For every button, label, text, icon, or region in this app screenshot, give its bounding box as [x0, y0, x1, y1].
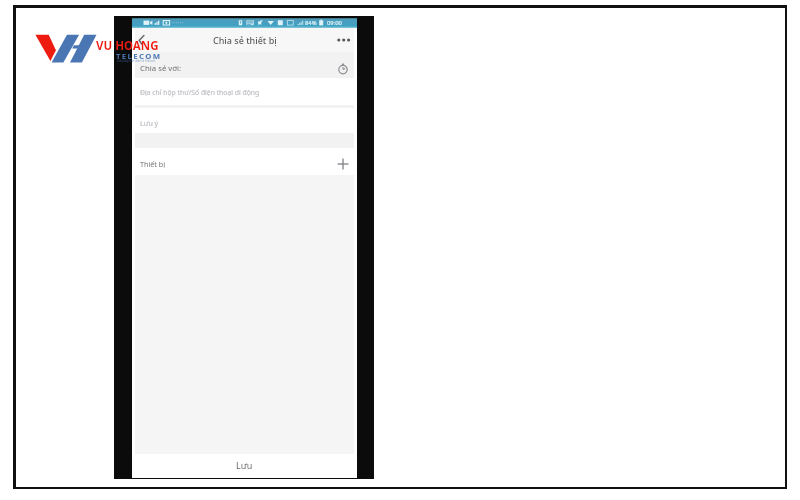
button[interactable]: Thiết bị — [135, 148, 354, 175]
button[interactable]: Chia sẻ với: — [135, 52, 354, 78]
staticText: Chia sẻ với: — [140, 63, 182, 74]
staticText: Giải pháp toàn diện về Telecom — [117, 59, 156, 63]
button[interactable]: Lưu ý — [135, 108, 354, 133]
staticText: Lưu — [236, 459, 253, 471]
button[interactable]: Lưu — [135, 454, 354, 478]
button[interactable]: More options — [330, 30, 354, 50]
button[interactable]: Địa chỉ hộp thư/Số điện thoại di động — [135, 78, 354, 105]
staticText: Địa chỉ hộp thư/Số điện thoại di động — [140, 88, 260, 97]
staticText: Lưu ý — [140, 119, 159, 129]
staticText: Chia sẻ thiết bị — [213, 34, 277, 46]
button[interactable]: Add device — [335, 156, 351, 172]
staticText: 84% — [305, 19, 317, 27]
staticText: 09:00 — [327, 19, 342, 27]
button[interactable]: Back — [135, 28, 155, 52]
staticText: VU HOANG — [96, 38, 159, 54]
staticText: Thiết bị — [140, 159, 166, 169]
button[interactable]: Set expiry time — [335, 61, 351, 77]
staticText: TELECOM — [116, 51, 162, 62]
